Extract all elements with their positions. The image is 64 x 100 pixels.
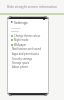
- button[interactable]: Apps and permissions: [10, 52, 49, 56]
- staticText: Apps and permissions: [12, 52, 39, 56]
- staticText: Night mode: [14, 38, 29, 42]
- staticText: Account: [11, 26, 21, 29]
- button[interactable]: Change theme colour: [10, 33, 49, 38]
- staticText: Wallpaper: [14, 43, 27, 47]
- staticText: Security settings: [12, 57, 33, 61]
- button[interactable]: Night mode: [10, 37, 49, 42]
- staticText: Hide straight screen information: [0, 4, 64, 8]
- staticText: Change theme colour: [14, 34, 41, 38]
- button[interactable]: About phone: [10, 65, 49, 69]
- button[interactable]: Wallpaper: [10, 42, 49, 47]
- button[interactable]: Security settings: [10, 57, 49, 61]
- staticText: Device: [11, 29, 19, 32]
- staticText: About phone: [12, 65, 28, 69]
- staticText: Storage space: [12, 61, 30, 65]
- staticText: Notifications and sound: [12, 47, 42, 51]
- button[interactable]: Storage space: [10, 61, 49, 65]
- button[interactable]: Back: [10, 20, 13, 23]
- staticText: Settings: [14, 20, 28, 25]
- button[interactable]: Notifications and sound: [10, 47, 49, 51]
